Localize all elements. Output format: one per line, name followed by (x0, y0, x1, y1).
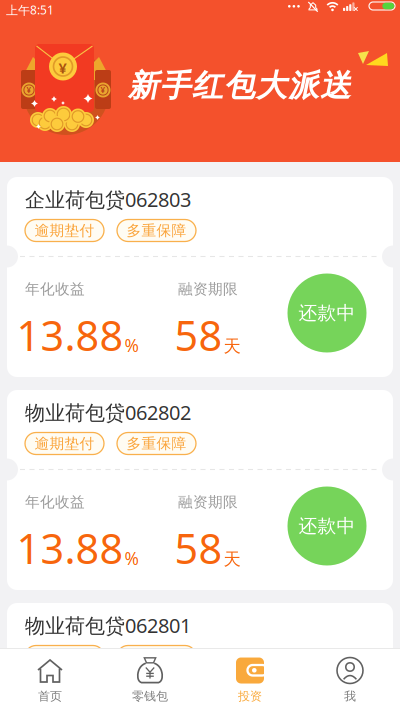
staticText: 多重保障 (126, 221, 186, 239)
staticText: 天 (223, 549, 240, 570)
staticText: 投资 (238, 689, 262, 704)
staticText: % (124, 547, 138, 570)
staticText: 天 (223, 336, 240, 357)
staticText: 逾期垫付 (34, 221, 94, 239)
staticText: 逾期垫付 (34, 434, 94, 452)
staticText: 物业荷包贷062801 (25, 612, 191, 639)
staticText: 还款中 (298, 301, 355, 324)
staticText: 上午8:51 (6, 2, 54, 18)
staticText: 逾期垫付 (34, 647, 94, 665)
staticText: 58 (174, 307, 222, 362)
staticText: ¥ (26, 85, 31, 95)
staticText: 多重保障 (126, 434, 186, 452)
staticText: 多重保障 (126, 647, 186, 665)
staticText: 13.88 (16, 520, 123, 575)
staticText: 企业荷包贷062803 (25, 186, 191, 213)
staticText: 我 (344, 689, 356, 704)
staticText: 13.88 (16, 307, 123, 362)
staticText: 物业荷包贷062802 (25, 399, 191, 426)
staticText: 融资期限 (178, 493, 238, 511)
staticText: ¥ (100, 85, 105, 95)
staticText: 融资期限 (178, 280, 238, 298)
staticText: 零钱包 (132, 689, 168, 704)
staticText: 新手红包大派送 (128, 67, 351, 105)
staticText: 还款中 (298, 514, 355, 537)
staticText: 年化收益 (25, 493, 85, 511)
staticText: ¥ (59, 58, 67, 77)
staticText: 年化收益 (25, 280, 85, 298)
staticText: 58 (174, 520, 222, 575)
staticText: 首页 (38, 689, 62, 704)
staticText: % (124, 334, 138, 357)
